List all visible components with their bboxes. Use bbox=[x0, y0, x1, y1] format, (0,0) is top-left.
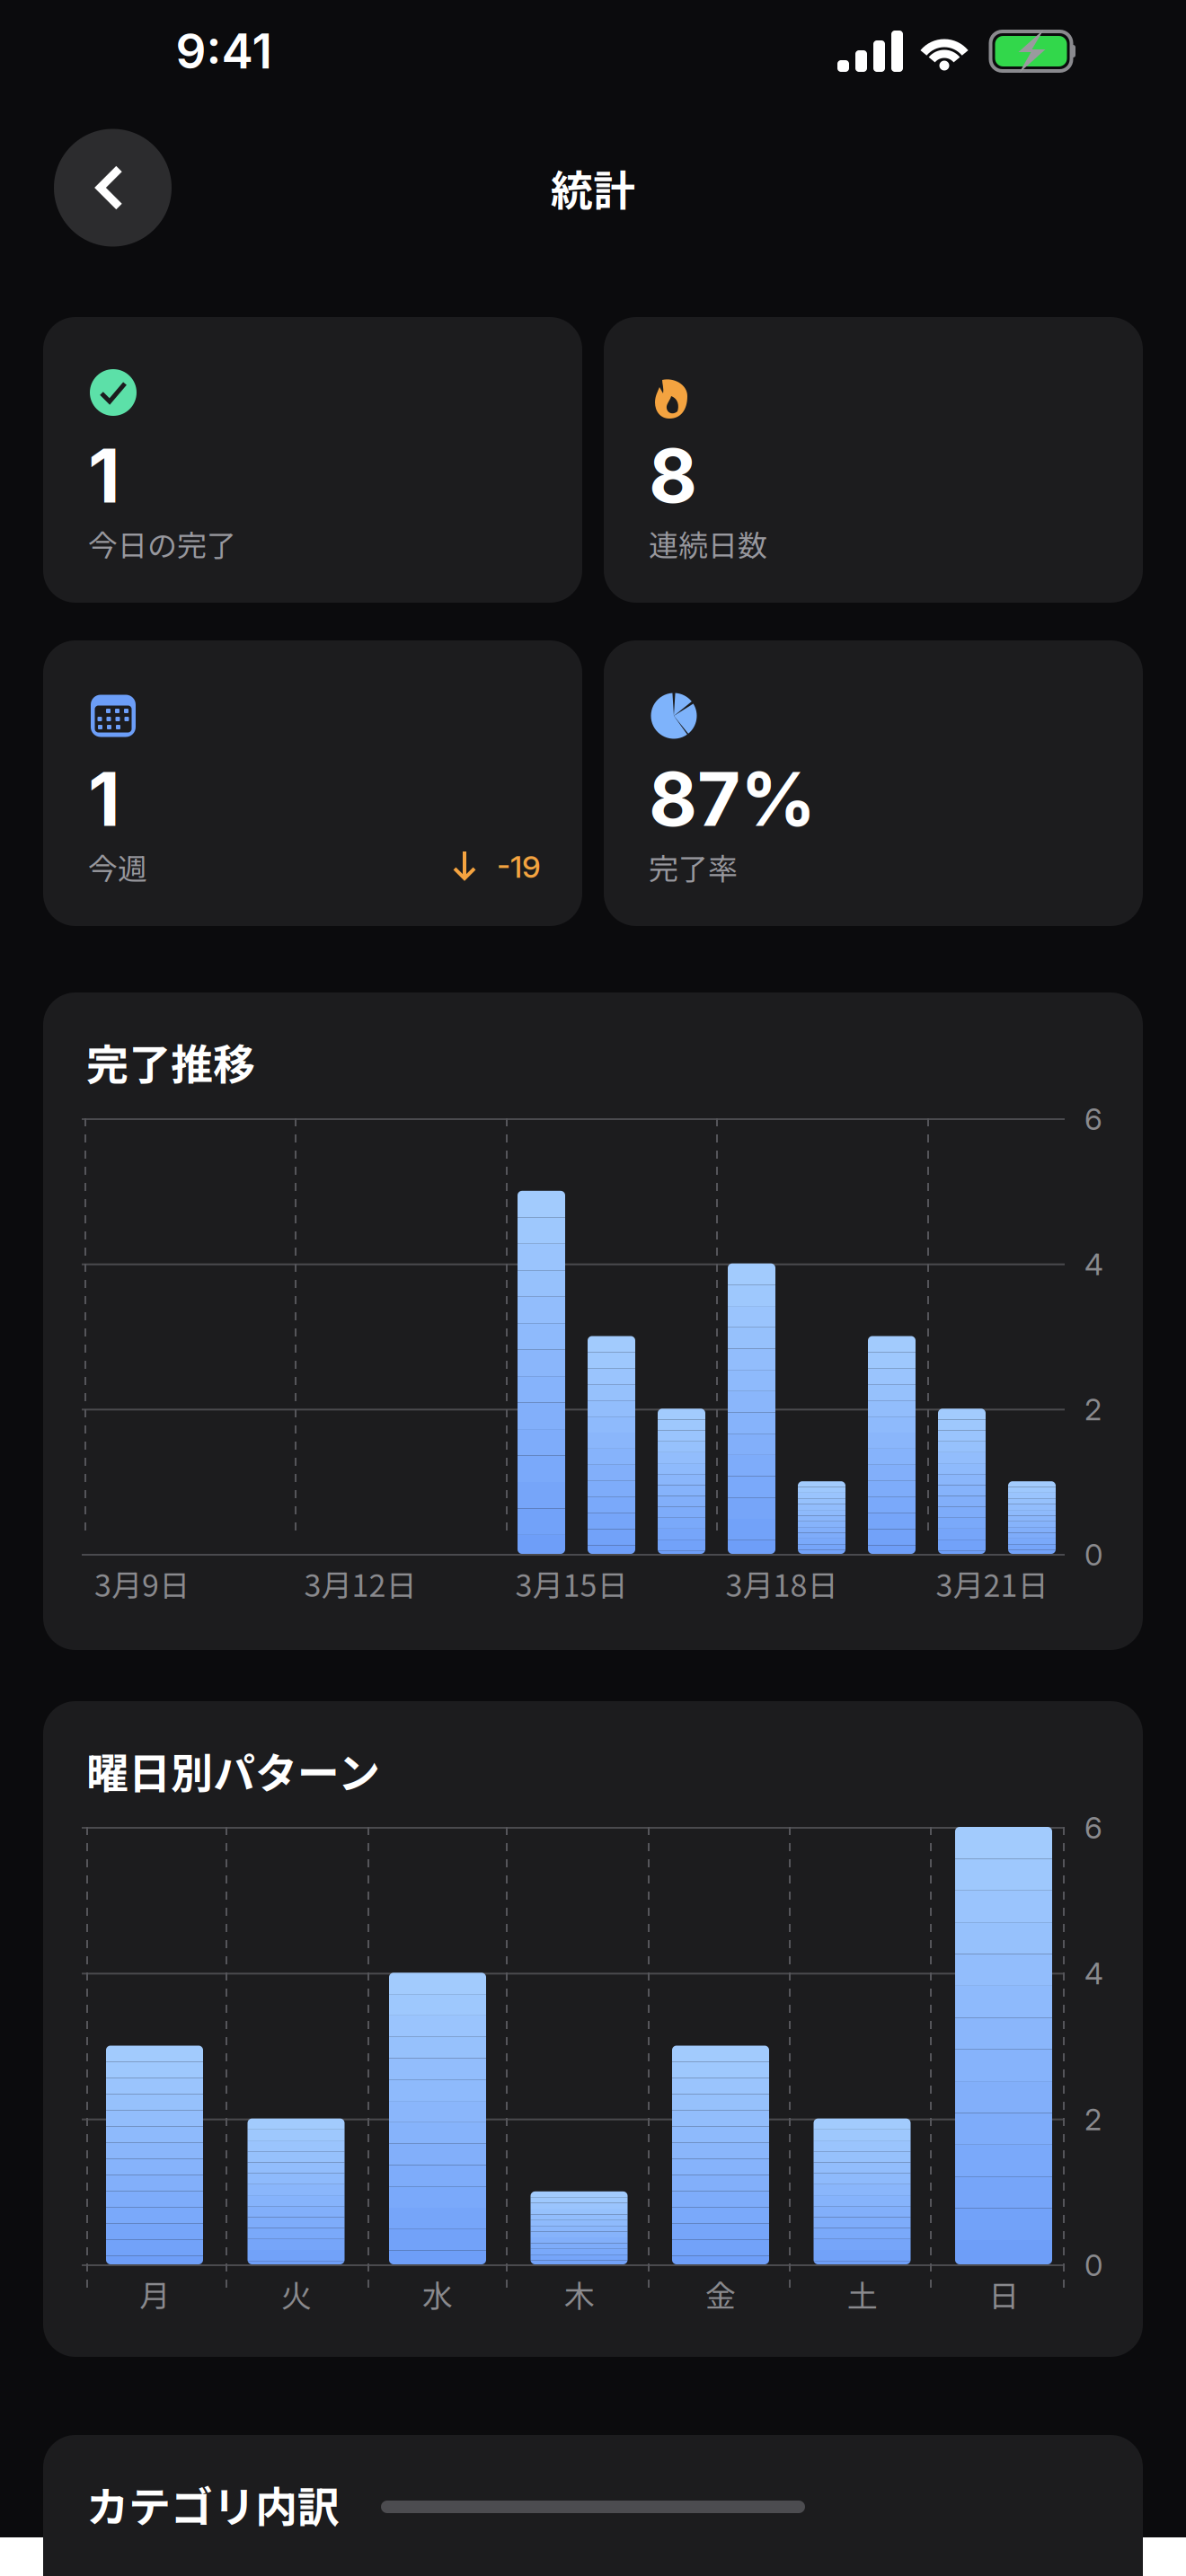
staticText: 9:41 bbox=[176, 22, 272, 80]
staticText: 6 bbox=[1084, 1101, 1102, 1137]
staticText: 3月12日 bbox=[304, 1561, 416, 1606]
staticText: 連続日数 bbox=[649, 522, 767, 565]
staticText: 4 bbox=[1084, 1956, 1103, 1992]
staticText: 3月21日 bbox=[936, 1561, 1048, 1606]
staticText: 3月18日 bbox=[726, 1561, 838, 1606]
staticText: 火 bbox=[281, 2272, 312, 2316]
staticText: 1 bbox=[88, 430, 120, 520]
staticText: 8 bbox=[649, 430, 697, 520]
staticText: 0 bbox=[1084, 1537, 1102, 1573]
staticText: 1 bbox=[88, 754, 120, 844]
staticText: 87% bbox=[649, 754, 816, 844]
staticText: 完了率 bbox=[649, 845, 738, 888]
staticText: 3月15日 bbox=[515, 1561, 628, 1606]
staticText: 曜日別パターン bbox=[86, 1740, 380, 1801]
staticText: 統計 bbox=[551, 157, 635, 218]
staticText: 水 bbox=[422, 2272, 453, 2316]
button[interactable]: 戻る bbox=[54, 129, 172, 247]
staticText: 2 bbox=[1084, 2101, 1102, 2137]
staticText: 木 bbox=[564, 2272, 595, 2316]
staticText: 金 bbox=[705, 2272, 736, 2316]
staticText: 今日の完了 bbox=[88, 522, 236, 565]
staticText: 3月9日 bbox=[94, 1561, 190, 1606]
staticText: -19 bbox=[497, 848, 541, 885]
staticText: 4 bbox=[1084, 1246, 1103, 1282]
staticText: 月 bbox=[139, 2272, 170, 2316]
staticText: 2 bbox=[1084, 1392, 1102, 1427]
staticText: カテゴリ内訳 bbox=[86, 2474, 340, 2535]
staticText: 土 bbox=[847, 2272, 878, 2316]
staticText: 0 bbox=[1084, 2247, 1102, 2283]
staticText: 完了推移 bbox=[86, 1031, 255, 1092]
staticText: 今週 bbox=[88, 845, 147, 888]
staticText: 6 bbox=[1084, 1810, 1102, 1846]
staticText: 日 bbox=[988, 2272, 1019, 2316]
